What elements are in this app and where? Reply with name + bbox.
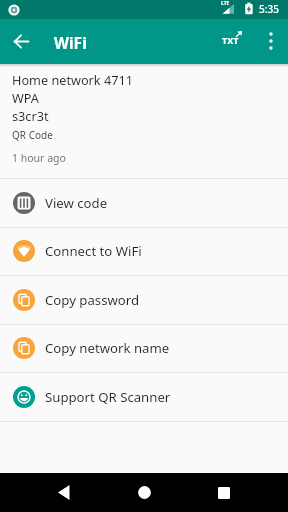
button[interactable] — [258, 26, 284, 56]
staticText: 5:35 — [259, 2, 279, 16]
button[interactable] — [196, 473, 252, 512]
staticText: 1 hour ago — [12, 151, 66, 165]
button[interactable]: Copy network name — [0, 324, 288, 372]
staticText: QR Code — [12, 128, 53, 142]
staticText: LTE — [221, 0, 230, 7]
button[interactable] — [36, 473, 92, 512]
staticText: WPA — [12, 89, 39, 106]
button[interactable]: Connect to WiFi — [0, 227, 288, 275]
staticText: Support QR Scanner — [45, 388, 171, 406]
staticText: Copy network name — [45, 339, 170, 357]
staticText: WiFi — [54, 32, 87, 52]
button[interactable] — [116, 473, 172, 512]
button[interactable]: Support QR Scanner — [0, 373, 288, 421]
staticText: Home network 4711 — [12, 71, 133, 88]
staticText: View code — [45, 194, 108, 212]
staticText: s3cr3t — [12, 107, 49, 124]
staticText: Connect to WiFi — [45, 242, 142, 260]
staticText: TXT — [222, 34, 239, 46]
button[interactable]: Copy password — [0, 276, 288, 324]
button[interactable]: TXT — [215, 27, 249, 57]
button[interactable] — [6, 26, 36, 56]
button[interactable]: View code — [0, 179, 288, 227]
staticText: Copy password — [45, 291, 140, 309]
